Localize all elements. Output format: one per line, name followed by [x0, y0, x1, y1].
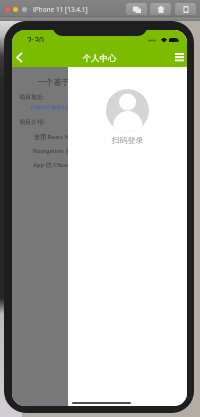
staticText: 一个基于 React Native 开发的 App — [12, 76, 187, 87]
staticText: 使用 React Native 开发的移动应用 — [34, 133, 127, 141]
staticText: 扫码登录 — [68, 135, 187, 145]
staticText: 项目介绍: — [19, 118, 45, 126]
button[interactable]: Scan QR code to sign in — [106, 89, 149, 132]
staticText: 2:30 — [27, 35, 44, 47]
staticText: iPhone 11 [13.4.1] — [33, 5, 88, 14]
staticText: Navigation 自定义封装, 路由管理 — [33, 147, 123, 155]
button[interactable]: Back — [12, 47, 29, 67]
button[interactable]: Screenshot — [126, 3, 147, 15]
button[interactable]: Home — [150, 3, 171, 15]
staticText: https://github.com/xiaolin3303 — [31, 103, 119, 111]
staticText: 个人中心 — [12, 53, 187, 64]
button[interactable]: Rotate — [175, 3, 196, 15]
button[interactable]: Menu — [170, 48, 187, 66]
staticText: App 仿 CNode 社区官方客户端 — [33, 161, 116, 169]
staticText: 项目地址: — [19, 93, 45, 101]
